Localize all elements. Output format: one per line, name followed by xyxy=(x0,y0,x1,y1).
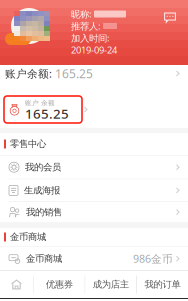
staticText: 165.25 xyxy=(55,65,93,81)
staticText: 我的会员 xyxy=(25,161,61,173)
staticText: 优惠券 xyxy=(46,279,73,290)
staticText: 165.25 xyxy=(25,105,69,122)
staticText: 加入时间: xyxy=(71,32,110,44)
staticText: 账户 余额 xyxy=(25,99,55,107)
staticText: 推荐人: xyxy=(71,20,101,32)
staticText: 零售中心 xyxy=(10,138,46,150)
staticText: 成为店主 xyxy=(93,279,129,290)
button[interactable]: 我的销售 xyxy=(0,202,188,222)
button[interactable]: 我的订单 xyxy=(137,271,188,298)
staticText: 昵称: xyxy=(71,8,92,20)
staticText: 生成海报 xyxy=(24,185,60,196)
staticText: 我的销售 xyxy=(26,206,62,218)
button[interactable]: 账户 余额 xyxy=(4,96,82,123)
staticText: 我的订单 xyxy=(144,279,180,290)
button[interactable]: 金币商城 xyxy=(0,247,188,271)
button[interactable]: 账户余额: xyxy=(0,65,188,82)
button[interactable]: 生成海报 xyxy=(0,179,188,201)
button[interactable]: 首页 xyxy=(0,271,33,298)
button[interactable]: 成为店主 xyxy=(85,271,136,298)
staticText: 金币商城 xyxy=(26,253,62,264)
button[interactable]: 消息 xyxy=(160,8,180,27)
button[interactable]: 我的会员 xyxy=(0,156,188,179)
staticText: 2019-09-24 xyxy=(71,44,117,56)
staticText: 账户余额: xyxy=(5,66,52,81)
button[interactable]: 优惠券 xyxy=(34,271,85,298)
staticText: 金币商城 xyxy=(10,231,46,243)
staticText: 986金币 xyxy=(133,252,173,266)
